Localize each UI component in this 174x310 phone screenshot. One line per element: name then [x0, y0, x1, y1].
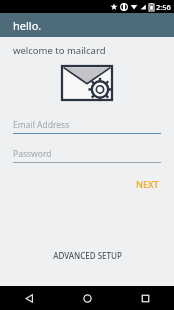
- button[interactable]: Back: [0, 286, 58, 310]
- staticText: hello.: [13, 18, 42, 33]
- button[interactable]: NEXT: [130, 174, 165, 194]
- staticText: 2:56: [156, 2, 171, 12]
- button[interactable]: Email Address: [13, 117, 161, 134]
- button[interactable]: ADVANCED SETUP: [43, 245, 132, 266]
- button[interactable]: Home: [58, 286, 116, 310]
- staticText: ADVANCED SETUP: [53, 250, 122, 261]
- button[interactable]: Recent apps: [116, 286, 174, 310]
- staticText: Email Address: [13, 119, 70, 131]
- staticText: Password: [13, 148, 52, 160]
- staticText: NEXT: [136, 178, 159, 190]
- button[interactable]: Password: [13, 146, 161, 163]
- staticText: welcome to mailcard: [13, 44, 106, 57]
